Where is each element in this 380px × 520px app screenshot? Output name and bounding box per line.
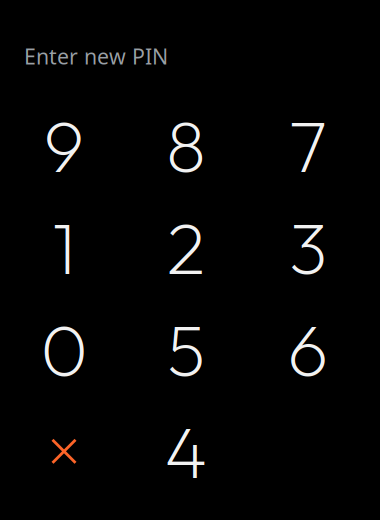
staticText: Enter new PIN xyxy=(24,42,168,70)
staticText: 4 xyxy=(164,406,207,497)
button[interactable]: 2 xyxy=(125,196,247,298)
button[interactable]: Delete xyxy=(3,400,125,502)
staticText: 9 xyxy=(43,100,84,191)
button[interactable]: 0 xyxy=(3,298,125,400)
button[interactable]: 3 xyxy=(247,196,369,298)
button[interactable]: 7 xyxy=(247,94,369,196)
staticText: 8 xyxy=(166,100,206,191)
staticText: 5 xyxy=(167,304,205,395)
button[interactable]: 1 xyxy=(3,196,125,298)
button[interactable]: 6 xyxy=(247,298,369,400)
staticText: 6 xyxy=(287,304,328,395)
staticText: 1 xyxy=(52,202,76,293)
button[interactable]: 9 xyxy=(3,94,125,196)
button[interactable]: 4 xyxy=(125,400,247,502)
button[interactable]: 8 xyxy=(125,94,247,196)
staticText: 7 xyxy=(289,100,327,191)
staticText: 3 xyxy=(289,202,327,293)
staticText: 0 xyxy=(40,304,87,395)
button[interactable]: 5 xyxy=(125,298,247,400)
staticText: 2 xyxy=(166,202,205,293)
